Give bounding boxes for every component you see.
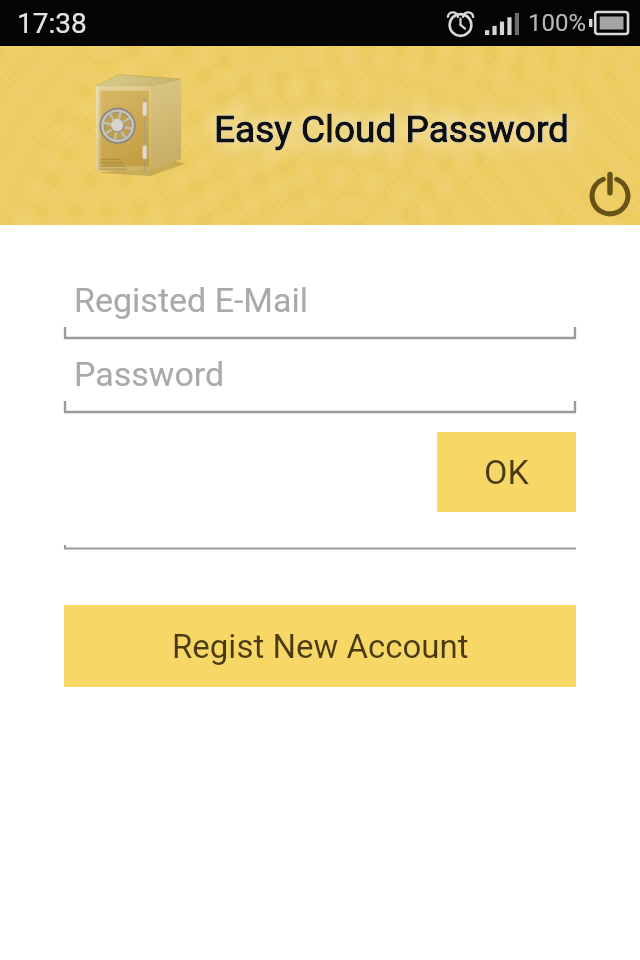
staticText: 17:38 (17, 7, 87, 40)
staticText: 100% (528, 9, 587, 37)
staticText: Registed E-Mail (74, 280, 309, 320)
staticText: Easy Cloud Password (214, 108, 569, 151)
button[interactable]: OK (437, 432, 576, 512)
button[interactable]: Password (64, 350, 576, 414)
staticText: Password (74, 354, 225, 394)
staticText: Easy Cloud Password (214, 108, 569, 151)
staticText: Regist New Account (172, 627, 469, 666)
button[interactable]: Power / Logout (584, 166, 636, 218)
button[interactable]: Registed E-Mail (64, 276, 576, 340)
staticText: OK (484, 452, 529, 492)
button[interactable]: Regist New Account (64, 605, 576, 687)
